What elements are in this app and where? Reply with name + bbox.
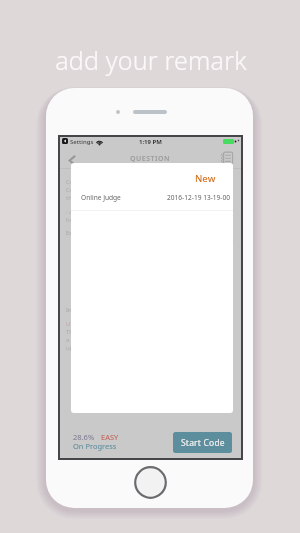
staticText: EASY	[101, 432, 119, 442]
staticText: 1:19 PM	[139, 138, 162, 146]
staticText: a line of	[66, 336, 89, 344]
button[interactable]: New	[195, 172, 216, 185]
staticText: 2016-12-19 13-19-00	[167, 193, 231, 202]
staticText: the following	[66, 194, 103, 202]
staticText: Start Code	[181, 437, 225, 449]
staticText: QUESTION	[130, 154, 171, 164]
staticText: Contents	[66, 178, 92, 186]
staticText: Input	[66, 306, 82, 314]
staticText: 28.6%	[73, 432, 95, 442]
staticText: add your remark	[1, 43, 300, 77]
staticText: Example	[66, 229, 91, 237]
staticText: Use the	[66, 320, 88, 328]
staticText: how many	[66, 216, 96, 224]
staticText: Consider a string	[66, 186, 115, 194]
button[interactable]: Back	[64, 152, 80, 168]
button[interactable]: Notes	[219, 150, 235, 166]
staticText: Online Judge	[81, 193, 121, 202]
staticText: Settings	[70, 138, 94, 146]
staticText: · abcdefg	[66, 208, 92, 216]
staticText: upper case	[66, 344, 98, 352]
staticText: m	[228, 237, 234, 245]
staticText: The first	[66, 328, 90, 336]
button[interactable]: Start Code	[173, 432, 232, 453]
staticText: On Progress	[73, 441, 117, 451]
